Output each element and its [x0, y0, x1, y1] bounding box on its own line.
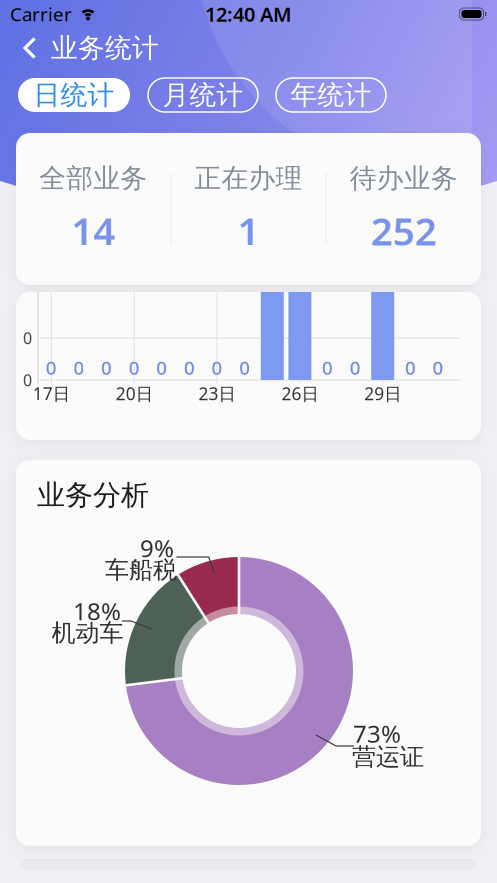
- staticText: 业务统计: [51, 32, 159, 64]
- staticText: 23日: [199, 382, 236, 405]
- staticText: 0: [23, 369, 32, 391]
- staticText: 26日: [281, 382, 318, 405]
- staticText: 月统计: [162, 79, 243, 111]
- staticText: 1: [237, 205, 259, 256]
- staticText: 0: [156, 355, 167, 380]
- staticText: 0: [184, 355, 195, 380]
- staticText: 0: [73, 355, 84, 380]
- staticText: 年统计: [290, 79, 371, 111]
- staticText: 日统计: [33, 79, 114, 111]
- staticText: 12:40 AM: [205, 1, 292, 27]
- staticText: 营运证: [352, 742, 424, 772]
- staticText: 车船税: [105, 555, 177, 585]
- staticText: Carrier: [10, 2, 72, 26]
- staticText: 18%: [73, 595, 121, 627]
- staticText: 0: [239, 355, 250, 380]
- staticText: 0: [129, 355, 140, 380]
- button[interactable]: Back: [0, 37, 37, 59]
- button[interactable]: 月统计: [148, 78, 258, 112]
- staticText: 0: [212, 355, 223, 380]
- staticText: 0: [322, 355, 333, 380]
- staticText: 全部业务: [39, 162, 147, 195]
- staticText: 0: [350, 355, 361, 380]
- staticText: 20日: [116, 382, 153, 405]
- staticText: 机动车: [51, 618, 123, 648]
- staticText: 0: [46, 355, 57, 380]
- staticText: 0: [433, 355, 444, 380]
- staticText: 0: [405, 355, 416, 380]
- staticText: 17日: [33, 382, 70, 405]
- staticText: 29日: [364, 382, 401, 405]
- button[interactable]: 年统计: [276, 78, 386, 112]
- button[interactable]: 日统计: [18, 78, 130, 112]
- staticText: 0: [23, 327, 32, 349]
- staticText: 73%: [353, 718, 401, 749]
- staticText: 9%: [140, 532, 174, 564]
- staticText: 待办业务: [350, 162, 458, 195]
- staticText: 14: [71, 205, 115, 256]
- staticText: 业务分析: [37, 478, 149, 512]
- staticText: 正在办理: [194, 162, 302, 195]
- staticText: 0: [101, 355, 112, 380]
- staticText: 252: [371, 205, 437, 256]
